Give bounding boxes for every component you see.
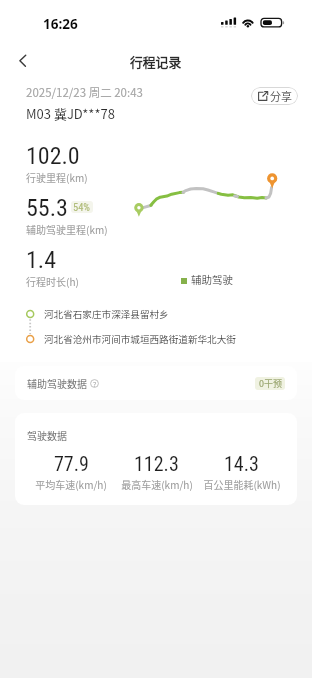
staticText: M03 冀JD***78 [26, 104, 115, 123]
button[interactable]: 辅助驾驶数据 [15, 366, 297, 400]
staticText: 百公里能耗(kWh) [203, 477, 281, 491]
staticText: 112.3 [134, 452, 179, 475]
staticText: 16:26 [43, 15, 78, 33]
staticText: 驾驶数据 [27, 428, 67, 442]
staticText: 分享 [270, 88, 292, 104]
staticText: 行程时长(h) [26, 274, 79, 288]
staticText: 0干预 [259, 377, 282, 390]
staticText: 辅助驾驶里程(km) [26, 222, 108, 236]
staticText: 最高车速(km/h) [121, 477, 193, 491]
staticText: 2025/12/23 周二 20:43 [26, 84, 143, 101]
staticText: 辅助驾驶数据 [27, 376, 87, 390]
button[interactable]: Back [8, 45, 40, 77]
staticText: 河北省沧州市河间市城垣西路街道新华北大街 [44, 332, 236, 346]
button[interactable]: 分享 [251, 87, 298, 105]
staticText: 77.9 [54, 452, 89, 475]
staticText: 54% [73, 201, 91, 213]
staticText: 55.3 [26, 194, 68, 222]
staticText: ? [93, 379, 97, 388]
staticText: 行驶里程(km) [26, 170, 88, 184]
staticText: 102.0 [26, 142, 80, 170]
staticText: 辅助驾驶 [191, 272, 233, 287]
staticText: 1.4 [26, 246, 57, 274]
staticText: 河北省石家庄市深泽县留村乡 [44, 307, 169, 321]
staticText: 14.3 [224, 452, 259, 475]
staticText: 平均车速(km/h) [35, 477, 107, 491]
staticText: 行程记录 [130, 52, 182, 71]
